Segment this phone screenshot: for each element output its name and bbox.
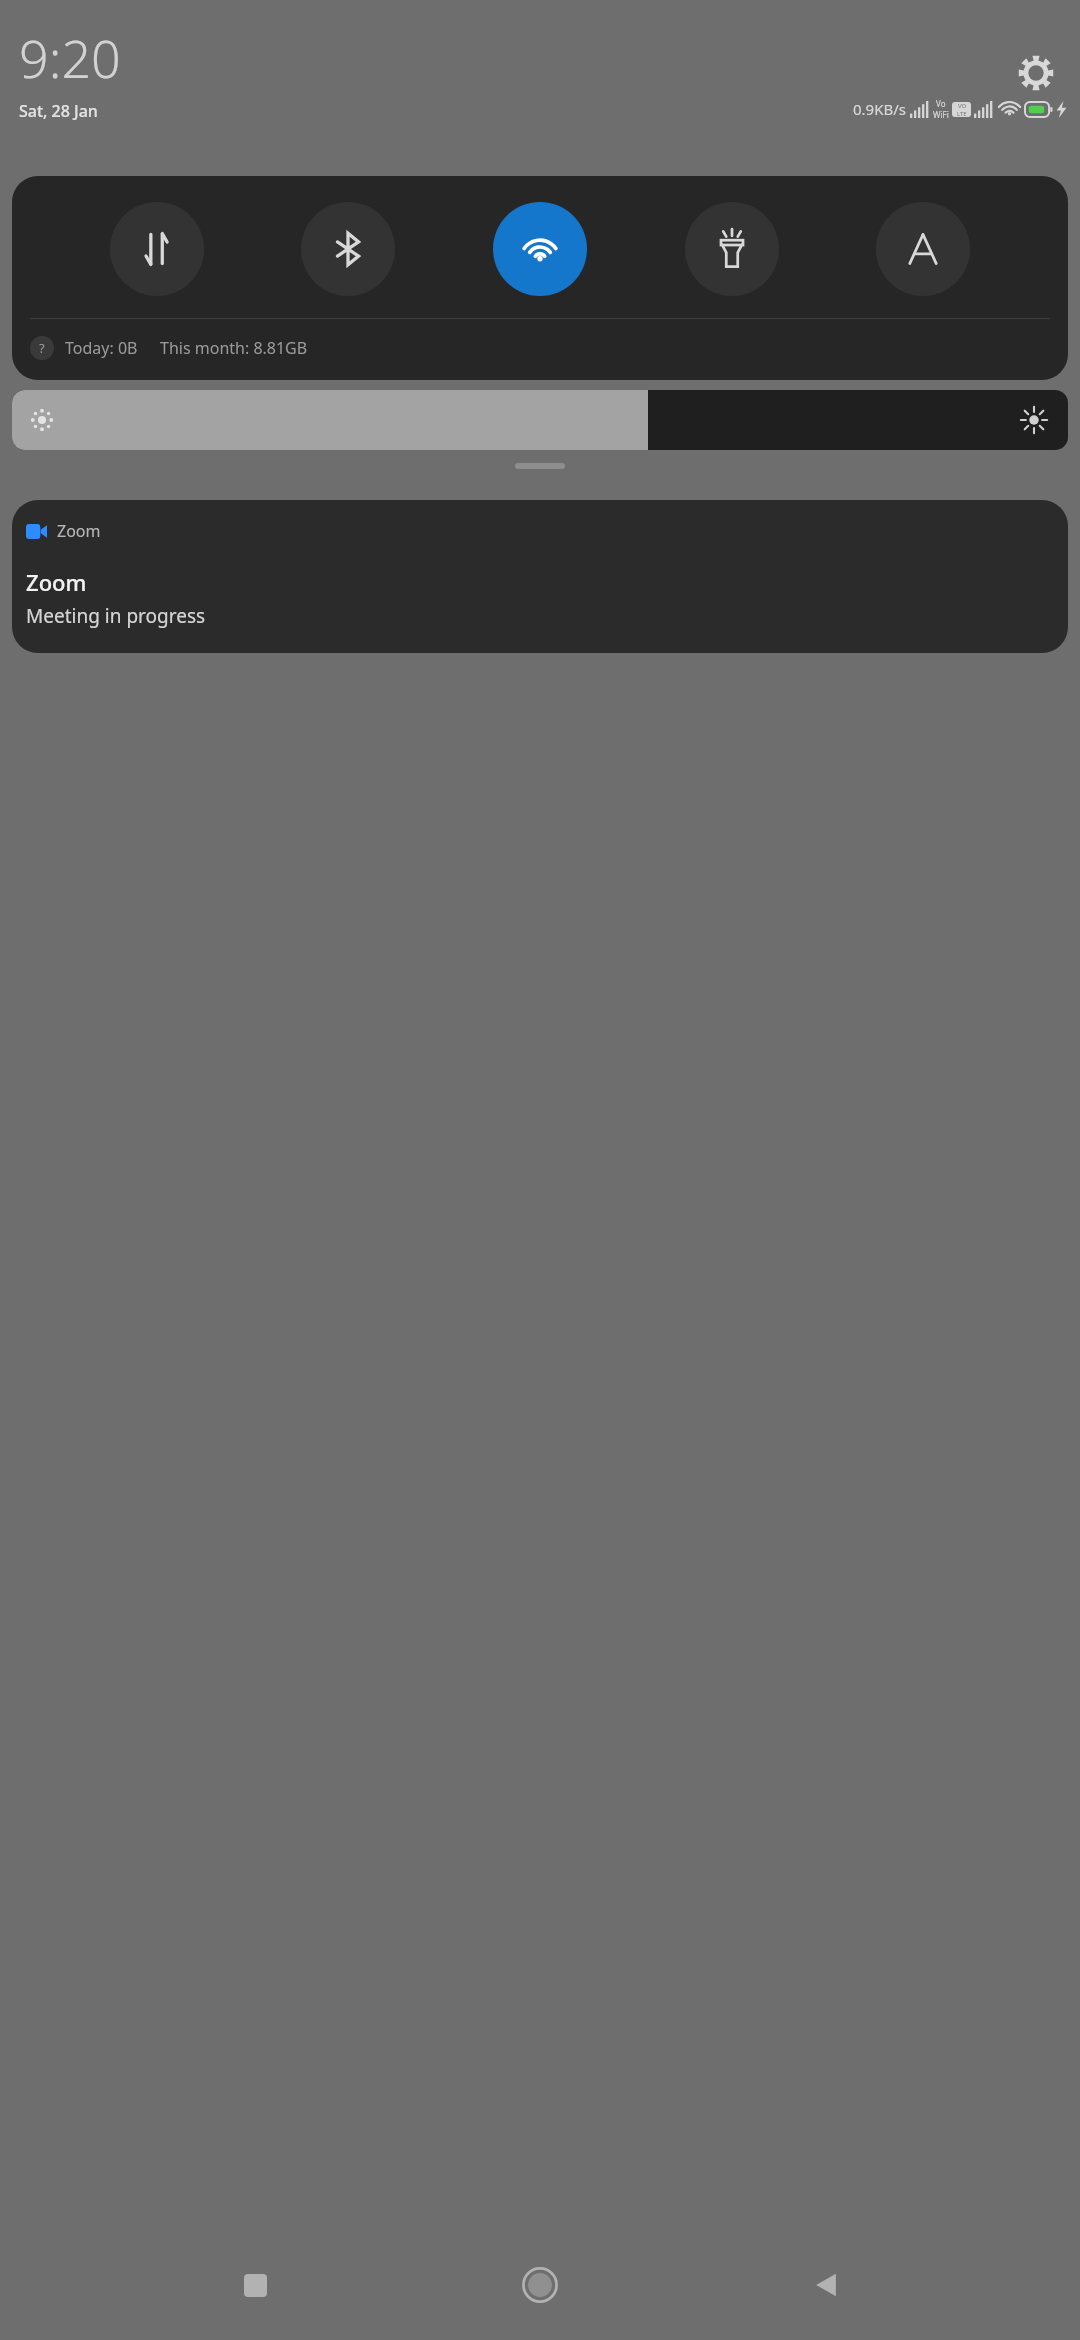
button[interactable]: Auto brightness: [876, 202, 970, 296]
staticText: LTE: [957, 110, 967, 117]
button[interactable]: Bluetooth: [301, 202, 395, 296]
button[interactable]: Home: [509, 2254, 571, 2316]
staticText: Zoom: [26, 567, 87, 597]
button[interactable]: Recents: [224, 2254, 286, 2316]
staticText: Today: 0B: [65, 337, 138, 359]
staticText: VO: [958, 102, 967, 110]
staticText: This month: 8.81GB: [160, 337, 308, 359]
button[interactable]: ?: [12, 319, 1068, 380]
button[interactable]: Brightness: [12, 390, 1068, 450]
staticText: ?: [39, 339, 45, 357]
staticText: WiFi: [933, 109, 949, 120]
staticText: Zoom: [57, 520, 101, 542]
button[interactable]: Wi-Fi: [493, 202, 587, 296]
staticText: Meeting in progress: [26, 603, 206, 629]
button[interactable]: Expand: [515, 463, 565, 469]
button[interactable]: Flashlight: [685, 202, 779, 296]
button[interactable]: Settings: [1014, 51, 1058, 95]
button[interactable]: Mobile data: [110, 202, 204, 296]
staticText: 0.9KB/s: [853, 99, 906, 119]
staticText: 9:20: [19, 22, 121, 93]
button[interactable]: Zoom: [12, 500, 1068, 653]
button[interactable]: Back: [795, 2254, 857, 2316]
staticText: Vo: [936, 98, 946, 109]
staticText: Sat, 28 Jan: [19, 100, 98, 122]
